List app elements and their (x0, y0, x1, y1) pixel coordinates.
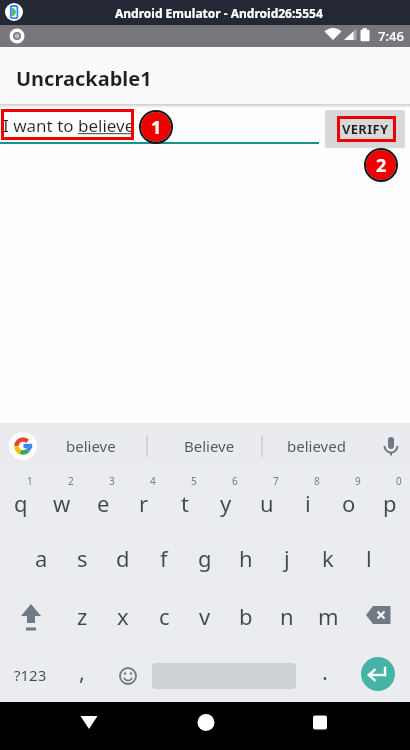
button[interactable] (0, 702, 136, 750)
button[interactable]: i (288, 483, 328, 523)
staticText: ?123 (14, 665, 47, 685)
staticText: , (79, 656, 85, 686)
button[interactable]: n (267, 596, 307, 636)
staticText: 1 (27, 474, 33, 488)
button[interactable]: w (42, 483, 82, 523)
button[interactable]: y (206, 483, 246, 523)
staticText: w (53, 488, 71, 518)
button[interactable]: m (308, 596, 348, 636)
staticText: 8 (314, 474, 320, 488)
staticText: 7:46 (378, 27, 404, 45)
button[interactable] (273, 702, 410, 750)
button[interactable]: t (165, 483, 205, 523)
staticText: p (383, 488, 397, 518)
staticText: n (280, 601, 294, 631)
button[interactable]: Believe (172, 423, 246, 469)
button[interactable]: I want to believe (3, 109, 323, 141)
staticText: 2 (68, 474, 74, 488)
button[interactable]: l (349, 538, 389, 578)
staticText: x (117, 601, 129, 631)
button[interactable]: VERIFY (325, 110, 405, 148)
button[interactable]: a (21, 538, 61, 578)
button[interactable]: p (370, 483, 410, 523)
button[interactable]: r (124, 483, 164, 523)
staticText: u (260, 488, 274, 518)
staticText: s (77, 543, 88, 573)
button[interactable]: u (247, 483, 287, 523)
staticText: v (199, 601, 211, 631)
button[interactable]: believe (57, 423, 124, 469)
staticText: i (305, 488, 311, 518)
staticText: 5 (191, 474, 197, 488)
button[interactable] (11, 596, 51, 636)
button[interactable]: x (103, 596, 143, 636)
staticText: 4 (150, 474, 156, 488)
staticText: l (366, 543, 372, 573)
button[interactable]: o (329, 483, 369, 523)
button[interactable]: z (62, 596, 102, 636)
staticText: 6 (232, 474, 238, 488)
button[interactable]: , (62, 651, 102, 691)
button[interactable] (358, 654, 398, 694)
staticText: r (139, 488, 149, 518)
staticText: 0 (396, 474, 402, 488)
button[interactable]: believed (281, 423, 351, 469)
staticText: y (220, 488, 232, 518)
staticText: Android Emulator - Android26:5554 (115, 5, 323, 21)
staticText: a (35, 543, 48, 573)
button[interactable] (136, 702, 273, 750)
button[interactable]: ?123 (10, 655, 50, 695)
button[interactable]: d (103, 538, 143, 578)
staticText: . (322, 656, 328, 686)
staticText: j (284, 543, 290, 573)
staticText: 1 (151, 115, 162, 140)
staticText: Uncrackable1 (16, 65, 152, 92)
button[interactable]: b (226, 596, 266, 636)
staticText: k (322, 543, 334, 573)
button[interactable]: h (226, 538, 266, 578)
staticText: 9 (355, 474, 361, 488)
staticText: b (239, 601, 253, 631)
button[interactable]: f (144, 538, 184, 578)
button[interactable]: k (308, 538, 348, 578)
button[interactable] (358, 596, 398, 636)
staticText: q (14, 488, 28, 518)
staticText: z (77, 601, 88, 631)
staticText: m (318, 601, 339, 631)
button[interactable]: g (185, 538, 225, 578)
button[interactable]: s (62, 538, 102, 578)
staticText: 7 (273, 474, 279, 488)
button[interactable]: j (267, 538, 307, 578)
staticText: c (159, 601, 170, 631)
staticText: d (116, 543, 130, 573)
staticText: 2 (376, 153, 387, 178)
staticText: h (239, 543, 253, 573)
staticText: believe (66, 436, 116, 456)
staticText: g (198, 543, 212, 573)
button[interactable]: . (305, 651, 345, 691)
staticText: o (342, 488, 356, 518)
button[interactable] (108, 656, 148, 696)
button[interactable]: e (83, 483, 123, 523)
staticText: I want to believe (3, 114, 135, 137)
staticText: f (160, 543, 168, 573)
staticText: 3 (109, 474, 115, 488)
button[interactable]: v (185, 596, 225, 636)
staticText: VERIFY (342, 120, 389, 138)
button[interactable]: c (144, 596, 184, 636)
staticText: t (181, 488, 189, 518)
staticText: e (97, 488, 110, 518)
staticText: Believe (184, 436, 235, 456)
button[interactable]: q (1, 483, 41, 523)
staticText: believed (287, 436, 346, 456)
